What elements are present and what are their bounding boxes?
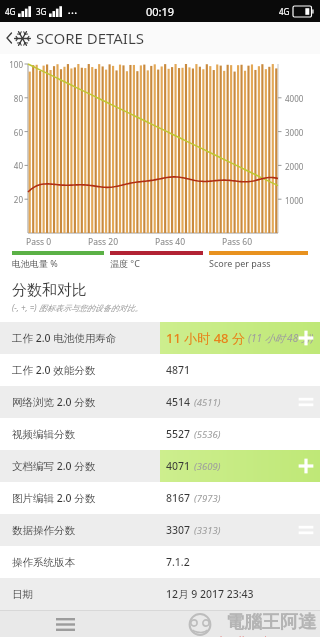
staticText: 4G (279, 6, 290, 17)
staticText: 20 (3, 194, 23, 205)
button[interactable]: Back (0, 22, 320, 54)
staticText: 数据操作分数 (12, 524, 75, 537)
staticText: 40 (3, 160, 23, 171)
button[interactable]: 操作系统版本 (0, 546, 320, 578)
staticText: 4871 (166, 363, 191, 377)
staticText: Pass 20 (88, 236, 118, 248)
staticText: 分数和对比 (12, 281, 87, 300)
staticText: 文档编写 2.0 分数 (12, 459, 96, 473)
other: Equal (298, 522, 314, 538)
staticText: 7.1.2 (166, 555, 190, 569)
staticText: 3307 (166, 523, 191, 537)
staticText: (4511) (194, 396, 221, 409)
staticText: 3G (36, 6, 47, 17)
staticText: 8167 (166, 491, 191, 505)
staticText: SCORE DETAILS (36, 28, 145, 48)
staticText: 4514 (166, 395, 191, 409)
button[interactable]: 工作 2.0 电池使用寿命 (0, 322, 320, 354)
staticText: 60 (3, 127, 23, 138)
staticText: 图片编辑 2.0 分数 (12, 491, 96, 505)
staticText: 00:19 (146, 4, 175, 19)
staticText: 5527 (166, 427, 191, 441)
staticText: Pass 0 (26, 236, 52, 248)
staticText: 3000 (285, 127, 304, 138)
staticText: 2000 (285, 161, 304, 172)
staticText: 11 小时 48 分 (166, 329, 245, 347)
staticText: 工作 2.0 效能分数 (12, 363, 96, 377)
other: Back (4, 29, 14, 47)
staticText: 4G (5, 6, 16, 17)
staticText: 温度 °C (110, 257, 209, 269)
staticText: (5536) (194, 428, 221, 441)
other: Better (298, 458, 314, 474)
button[interactable]: 日期 (0, 578, 320, 610)
staticText: 日期 (12, 588, 33, 601)
button[interactable]: 工作 2.0 效能分数 (0, 354, 320, 386)
staticText: 视频编辑分数 (12, 428, 75, 441)
staticText: (3313) (194, 524, 221, 537)
staticText: 4000 (285, 93, 304, 104)
staticText: (11 小时 48 分) (248, 331, 314, 345)
other: Better (298, 330, 314, 346)
staticText: (-, +, =) 图标表示与您的设备的对比。 (12, 302, 143, 313)
other: Equal (298, 394, 314, 410)
button[interactable]: 视频编辑分数 (0, 418, 320, 450)
button[interactable]: 网络浏览 2.0 分数 (0, 386, 320, 418)
staticText: 1000 (285, 195, 304, 206)
staticText: (7973) (194, 492, 221, 505)
staticText: 网络浏览 2.0 分数 (12, 395, 96, 409)
staticText: Score per pass (209, 257, 308, 269)
button[interactable]: Menu (48, 611, 82, 637)
staticText: 80 (3, 93, 23, 104)
staticText: 4071 (166, 459, 191, 473)
staticText: (3609) (194, 460, 221, 473)
staticText: Pass 40 (155, 236, 185, 248)
staticText: 100 (3, 59, 23, 70)
staticText: 电池电量 % (12, 257, 110, 269)
staticText: http://www.kocpc.com.tw (220, 634, 316, 637)
staticText: 12月 9 2017 23:43 (166, 587, 254, 601)
staticText: 電腦王阿達 (226, 611, 316, 634)
button[interactable]: 图片编辑 2.0 分数 (0, 482, 320, 514)
button[interactable]: 文档编写 2.0 分数 (0, 450, 320, 482)
staticText: 操作系统版本 (12, 556, 75, 569)
button[interactable]: 数据操作分数 (0, 514, 320, 546)
staticText: Pass 60 (222, 236, 252, 248)
staticText: 工作 2.0 电池使用寿命 (12, 331, 117, 345)
